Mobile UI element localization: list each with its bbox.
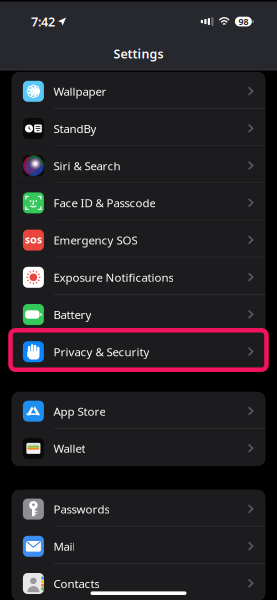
staticText: Passwords xyxy=(53,501,109,517)
button[interactable]: Contacts xyxy=(11,564,265,600)
button[interactable]: Settings xyxy=(0,41,277,69)
button[interactable]: Mail xyxy=(11,527,265,564)
staticText: Wallpaper xyxy=(53,83,106,99)
staticText: Battery xyxy=(53,307,91,322)
button[interactable]: Exposure Notifications xyxy=(11,258,265,295)
button[interactable]: Privacy & Security xyxy=(11,332,265,369)
staticText: SOS xyxy=(25,234,42,246)
staticText: 98 xyxy=(238,16,248,28)
staticText: Wallet xyxy=(53,441,85,456)
staticText: App Store xyxy=(53,403,105,419)
staticText: Exposure Notifications xyxy=(53,269,173,285)
button[interactable]: Wallpaper xyxy=(11,72,265,109)
staticText: Contacts xyxy=(53,576,99,591)
button[interactable]: StandBy xyxy=(11,109,265,146)
button[interactable]: SOS xyxy=(11,221,265,258)
button[interactable]: Siri & Search xyxy=(11,146,265,183)
button[interactable]: Battery xyxy=(11,295,265,332)
button[interactable]: Passwords xyxy=(11,490,265,527)
button[interactable]: App Store xyxy=(11,392,265,429)
button[interactable]: Face ID & Passcode xyxy=(11,183,265,221)
staticText: 7:42 xyxy=(31,13,55,30)
staticText: Settings xyxy=(113,45,163,62)
staticText: Emergency SOS xyxy=(53,232,137,248)
staticText: Mail xyxy=(53,538,75,554)
staticText: StandBy xyxy=(53,121,96,136)
staticText: Privacy & Security xyxy=(53,344,149,359)
staticText: Face ID & Passcode xyxy=(53,195,155,211)
staticText: Siri & Search xyxy=(53,158,120,173)
button[interactable]: Wallet xyxy=(11,429,265,466)
